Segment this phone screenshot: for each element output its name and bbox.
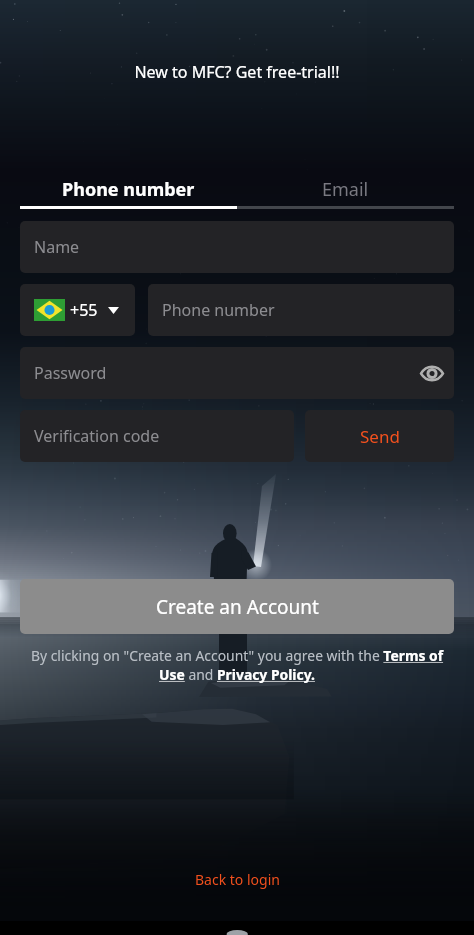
staticText: Send <box>360 425 400 448</box>
button[interactable]: Back to login <box>0 870 474 889</box>
button[interactable]: Password <box>20 347 454 399</box>
button[interactable]: Email <box>237 173 454 206</box>
button[interactable]: +55 <box>20 284 135 336</box>
button[interactable]: Verification code <box>20 410 294 462</box>
staticText: Phone number <box>162 299 275 321</box>
staticText: Create an Account <box>156 594 319 620</box>
button[interactable]: Name <box>20 221 454 273</box>
staticText: Password <box>34 362 107 384</box>
button[interactable]: Phone number <box>20 173 237 206</box>
staticText: Verification code <box>34 425 160 447</box>
staticText: +55 <box>70 299 98 321</box>
button[interactable]: Show password <box>411 352 453 394</box>
button[interactable]: Send <box>305 410 454 462</box>
staticText: Back to login <box>195 870 280 889</box>
staticText: Phone number <box>62 177 195 202</box>
button[interactable]: Phone number <box>148 284 454 336</box>
staticText: New to MFC? Get free-trial!! <box>0 61 474 83</box>
staticText: Email <box>322 177 369 202</box>
button[interactable]: Create an Account <box>20 579 454 634</box>
staticText: Name <box>34 236 80 258</box>
staticText: By clicking on "Create an Account" you a… <box>22 646 452 684</box>
